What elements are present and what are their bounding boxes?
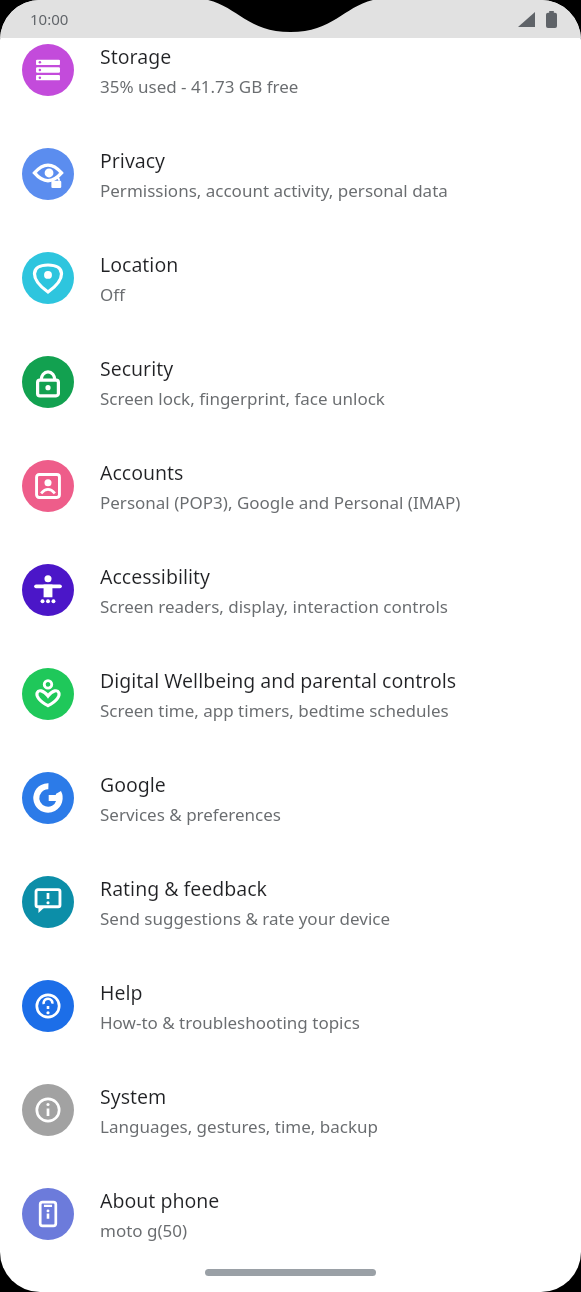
staticText: Storage: [100, 43, 172, 70]
staticText: Privacy: [100, 147, 166, 174]
staticText: Accessibility: [100, 563, 210, 590]
staticText: Permissions, account activity, personal …: [100, 179, 448, 202]
staticText: Help: [100, 979, 143, 1006]
staticText: moto g(50): [100, 1219, 188, 1242]
button[interactable]: Privacy: [0, 122, 581, 226]
button[interactable]: Accounts: [0, 434, 581, 538]
button[interactable]: Help: [0, 954, 581, 1058]
staticText: Screen readers, display, interaction con…: [100, 595, 448, 618]
button[interactable]: Accessibility: [0, 538, 581, 642]
button[interactable]: System: [0, 1058, 581, 1162]
staticText: Accounts: [100, 459, 184, 486]
staticText: 10:00: [30, 9, 69, 29]
staticText: Send suggestions & rate your device: [100, 907, 391, 930]
staticText: 35% used - 41.73 GB free: [100, 75, 299, 98]
staticText: Personal (POP3), Google and Personal (IM…: [100, 491, 461, 514]
button[interactable]: About phone: [0, 1162, 581, 1266]
button[interactable]: Digital Wellbeing and parental controls: [0, 642, 581, 746]
staticText: Screen time, app timers, bedtime schedul…: [100, 699, 449, 722]
staticText: Rating & feedback: [100, 875, 267, 902]
staticText: Off: [100, 283, 125, 306]
staticText: Location: [100, 251, 179, 278]
button[interactable]: Rating & feedback: [0, 850, 581, 954]
staticText: Security: [100, 355, 174, 382]
staticText: Google: [100, 771, 166, 798]
staticText: Screen lock, fingerprint, face unlock: [100, 387, 385, 410]
staticText: System: [100, 1083, 167, 1110]
staticText: How-to & troubleshooting topics: [100, 1011, 360, 1034]
button[interactable]: Google: [0, 746, 581, 850]
button[interactable]: Storage: [0, 18, 581, 122]
staticText: Languages, gestures, time, backup: [100, 1115, 379, 1138]
staticText: About phone: [100, 1187, 220, 1214]
button[interactable]: Location: [0, 226, 581, 330]
staticText: Digital Wellbeing and parental controls: [100, 667, 457, 694]
staticText: Services & preferences: [100, 803, 281, 826]
button[interactable]: Security: [0, 330, 581, 434]
